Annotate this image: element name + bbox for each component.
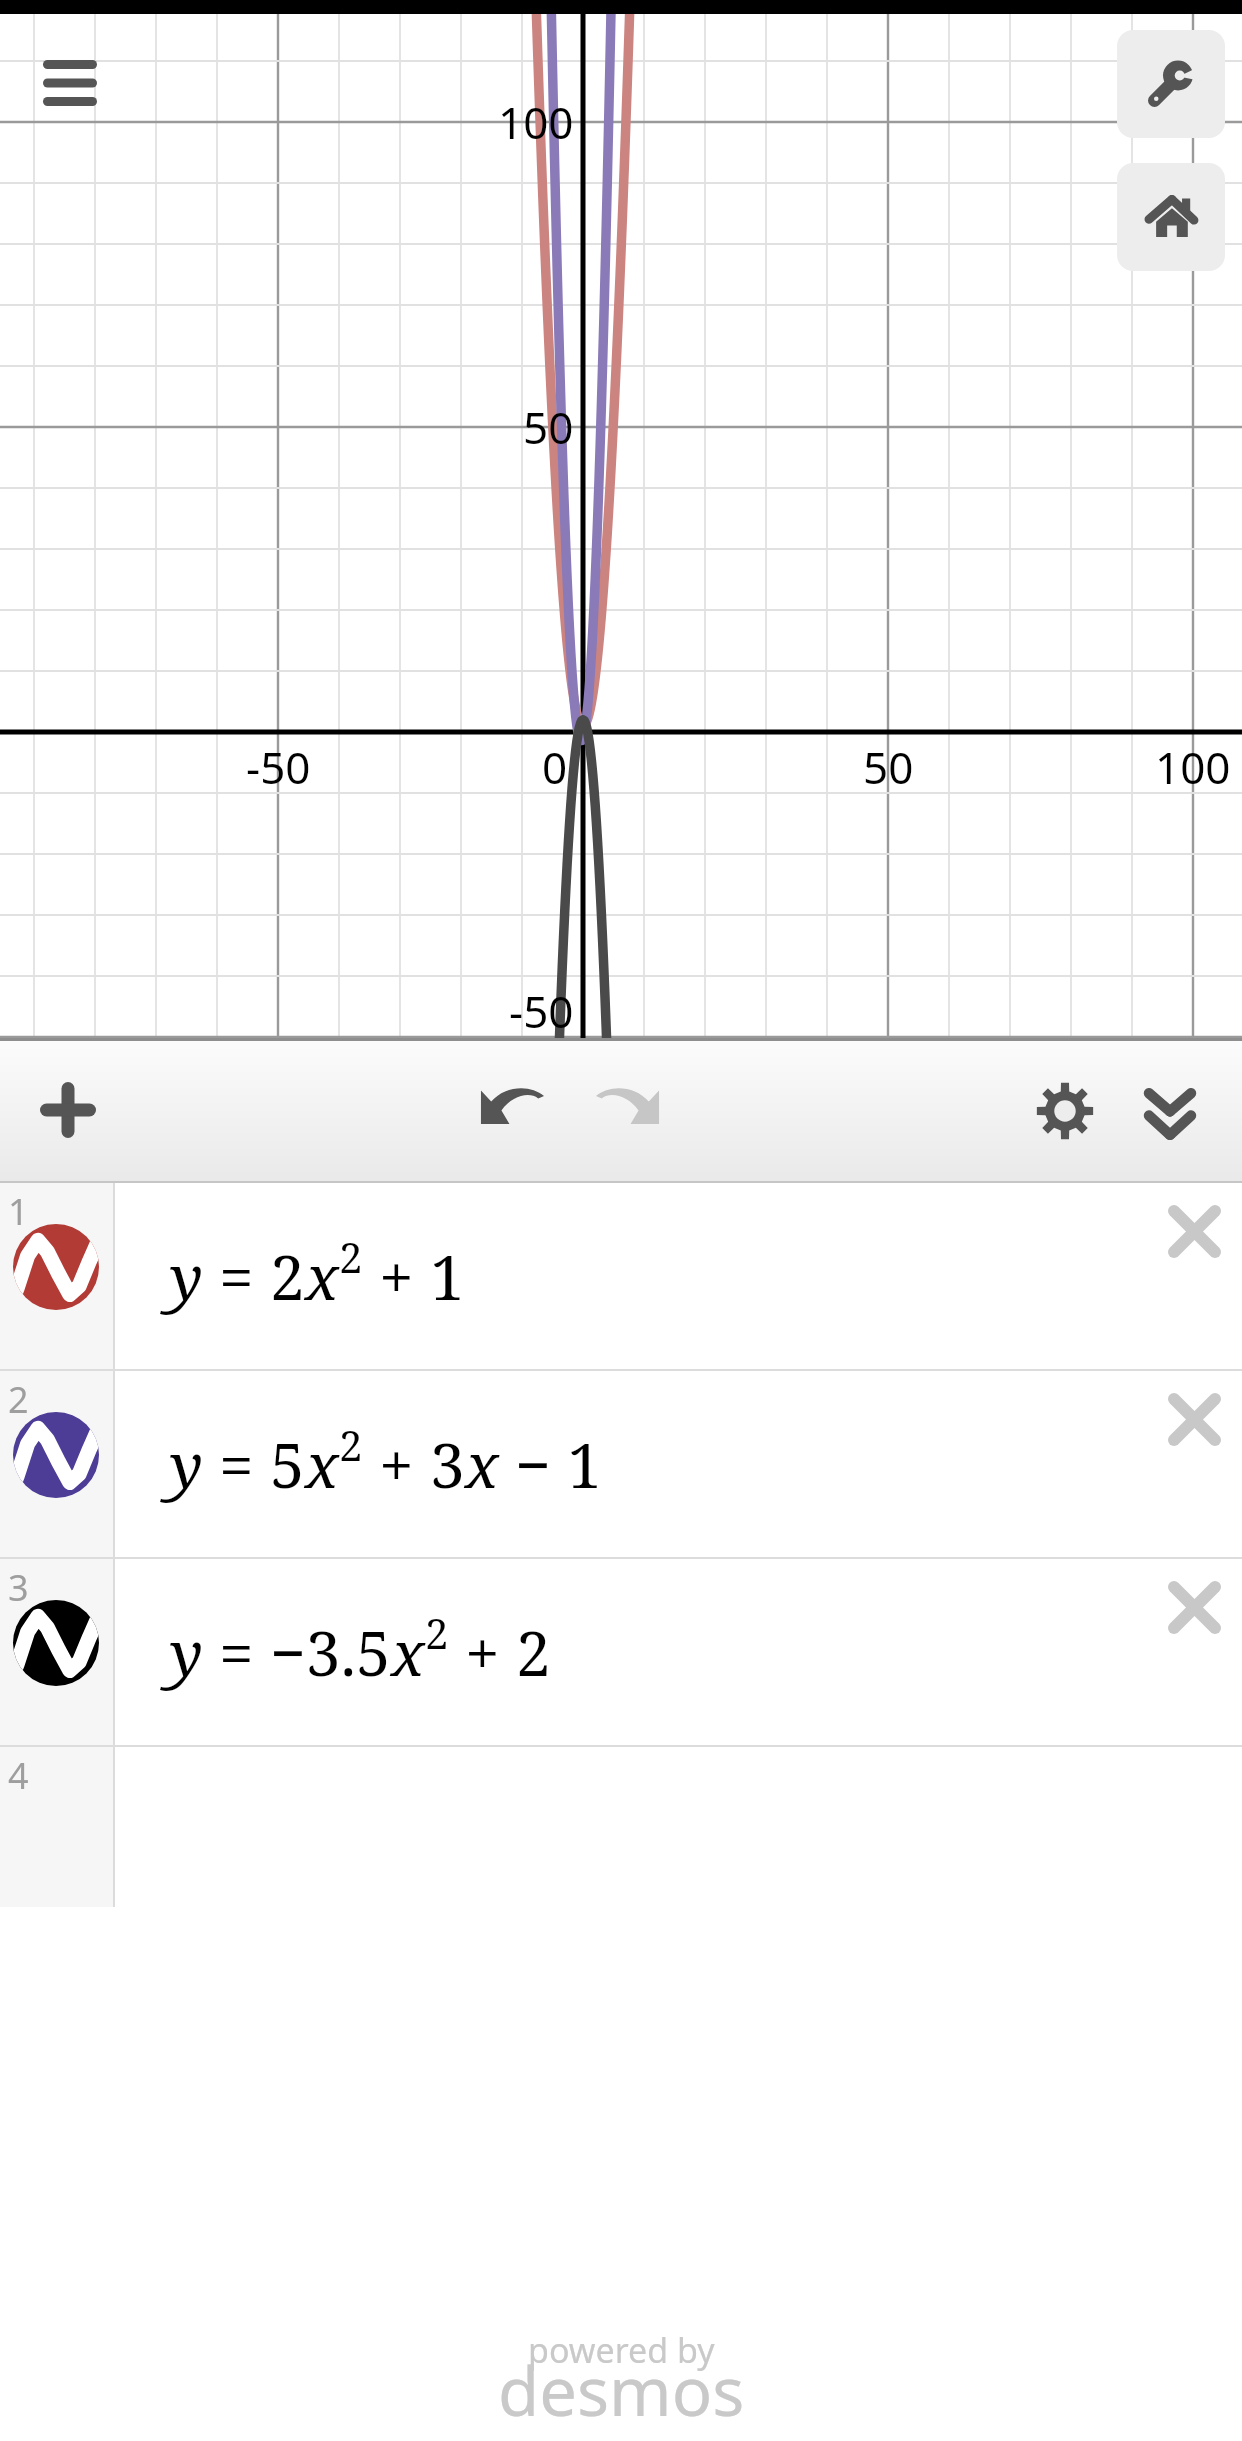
staticText: = −3.5 xyxy=(203,1610,391,1694)
staticText: + 1 xyxy=(363,1234,465,1318)
button[interactable]: Delete expression 3 xyxy=(1102,1559,1242,1745)
staticText: 2 xyxy=(339,1228,363,1285)
staticText: x xyxy=(305,1234,339,1318)
staticText: + 2 xyxy=(449,1610,551,1694)
staticText: x xyxy=(305,1422,339,1506)
staticText: 50 xyxy=(523,397,574,457)
button[interactable]: Graph settings xyxy=(1117,30,1225,138)
button[interactable]: Redo xyxy=(568,1054,688,1154)
staticText: -50 xyxy=(509,981,574,1038)
button[interactable]: Delete expression 1 xyxy=(1102,1183,1242,1369)
button[interactable]: Delete expression 2 xyxy=(1102,1371,1242,1557)
staticText: 100 xyxy=(498,92,574,152)
staticText: = 2 xyxy=(203,1234,305,1318)
staticText: 2 xyxy=(425,1604,449,1661)
button[interactable]: Settings xyxy=(1010,1061,1120,1161)
staticText: y xyxy=(170,1234,203,1318)
button[interactable]: 1 xyxy=(0,1183,1242,1369)
staticText: powered by xyxy=(528,2327,715,2373)
staticText: 3 xyxy=(8,1563,29,1612)
staticText: -50 xyxy=(246,737,311,797)
staticText: − 1 xyxy=(499,1422,602,1506)
staticText: 4 xyxy=(8,1751,29,1800)
staticText: x xyxy=(465,1422,499,1506)
staticText: 1 xyxy=(8,1187,29,1236)
button[interactable]: Undo xyxy=(452,1054,572,1154)
staticText: = 5 xyxy=(203,1422,305,1506)
button[interactable]: 3 xyxy=(0,1559,1242,1745)
staticText: y xyxy=(170,1422,203,1506)
button[interactable]: Home xyxy=(1117,163,1225,271)
staticText: 0 xyxy=(542,737,568,797)
staticText: + 3 xyxy=(363,1422,465,1506)
staticText: 2 xyxy=(8,1375,29,1424)
button[interactable]: Menu xyxy=(11,35,129,131)
staticText: 50 xyxy=(863,737,914,797)
button[interactable]: 2 xyxy=(0,1371,1242,1557)
staticText: 100 xyxy=(1155,737,1231,797)
staticText: desmos xyxy=(498,2344,745,2435)
button[interactable]: Add expression xyxy=(8,1060,128,1160)
staticText: x xyxy=(391,1610,425,1694)
staticText: y xyxy=(170,1610,203,1694)
staticText: 2 xyxy=(339,1416,363,1473)
button[interactable]: 4 xyxy=(0,1747,1242,1907)
button[interactable]: Collapse keypad xyxy=(1115,1064,1225,1164)
